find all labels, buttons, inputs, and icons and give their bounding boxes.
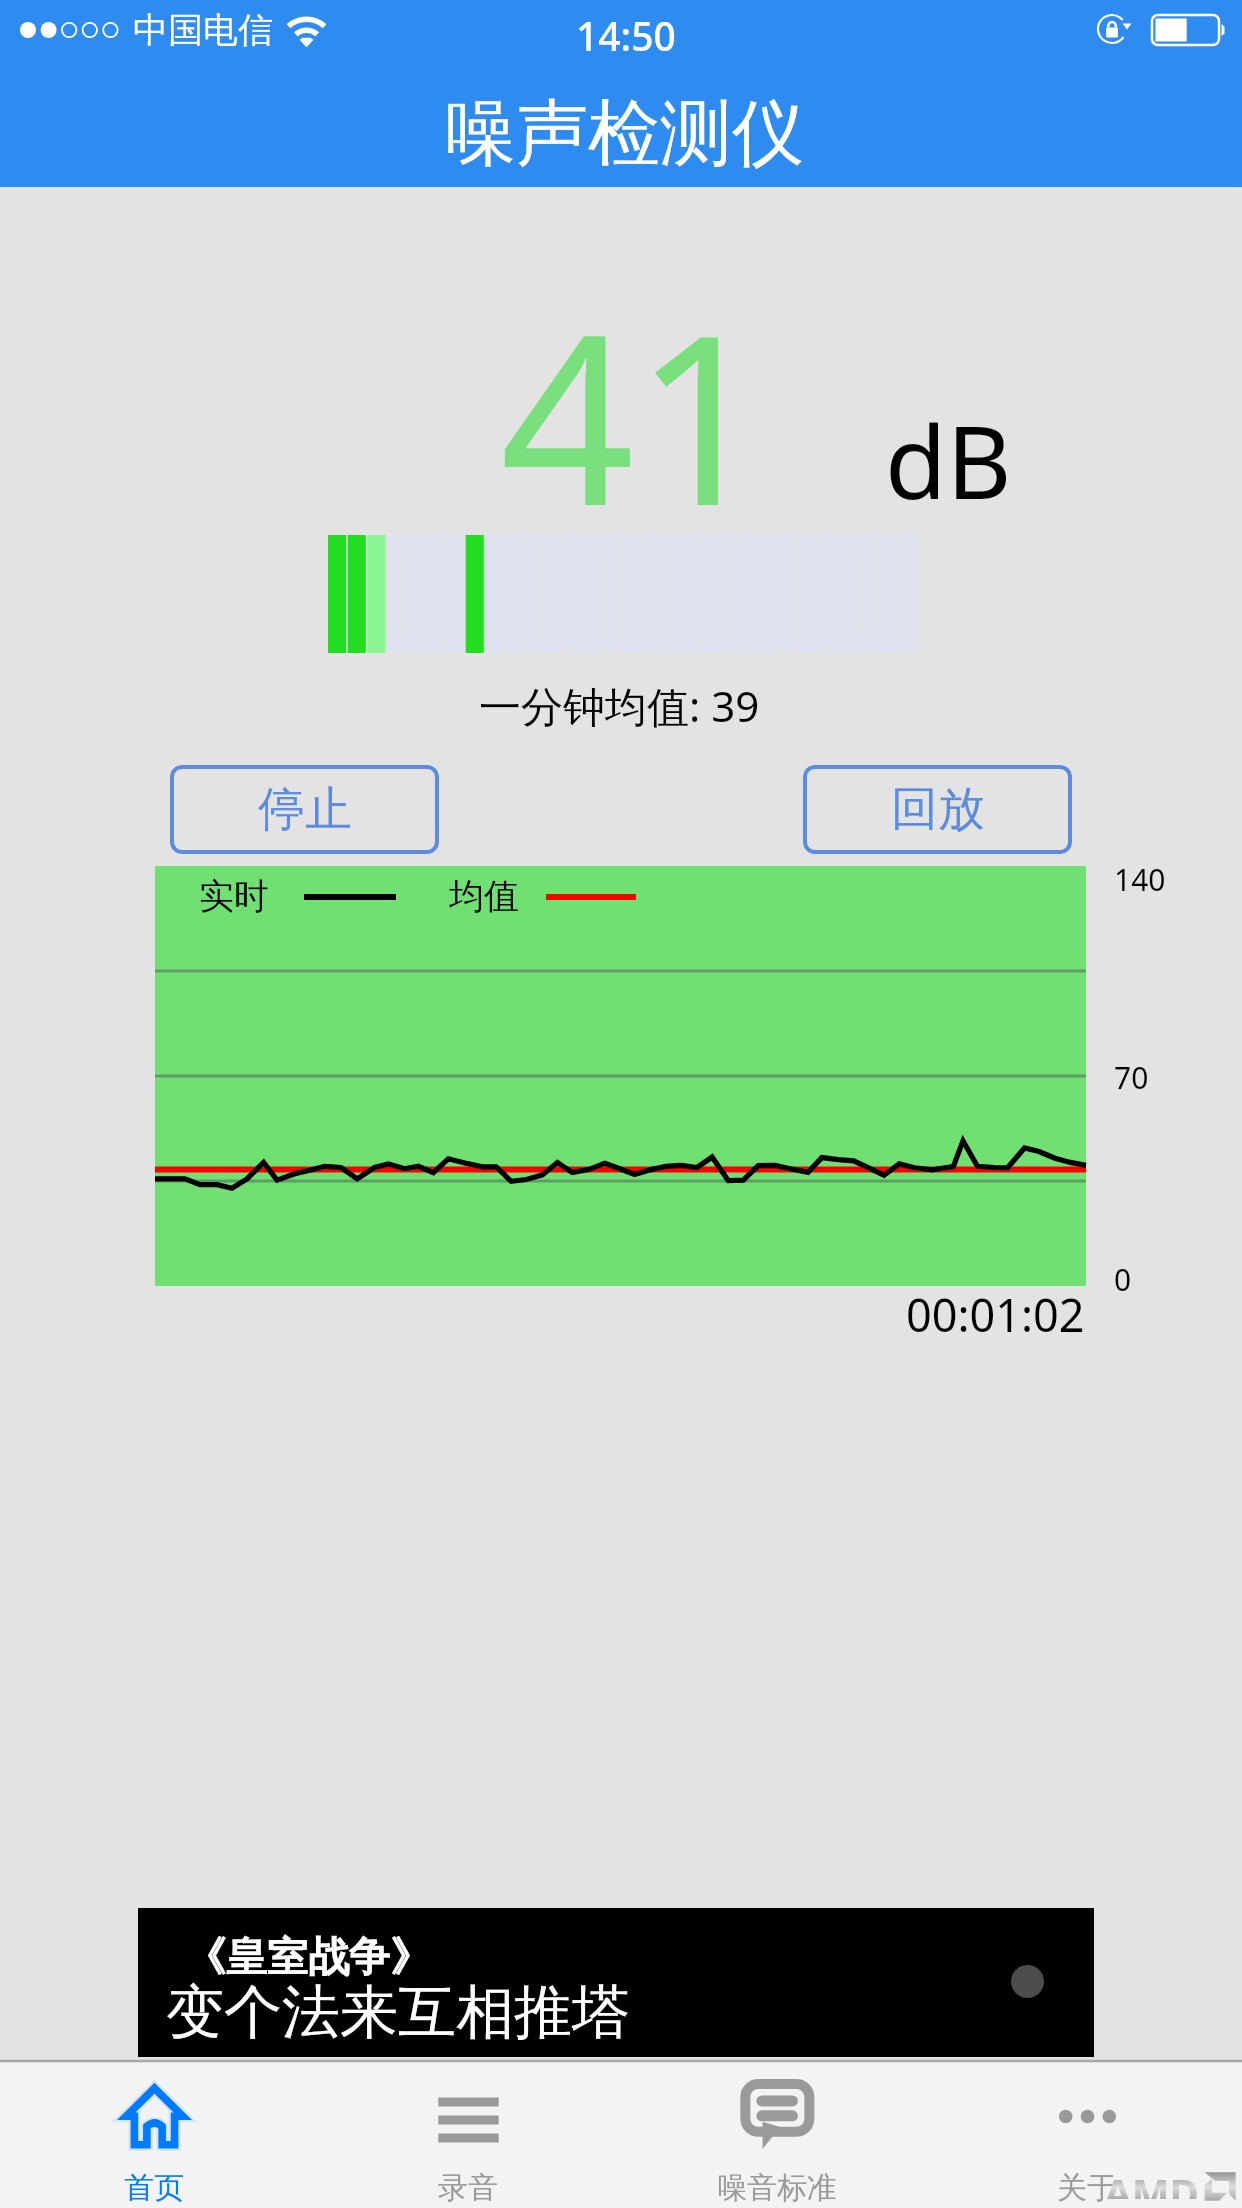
staticText: 41: [500, 254, 769, 574]
staticText: 均值: [449, 874, 519, 918]
staticText: 140: [1114, 859, 1166, 900]
staticText: 噪音标准: [717, 2169, 837, 2207]
button[interactable]: 《皇室战争》: [138, 1908, 1094, 2057]
staticText: 关于: [1057, 2169, 1117, 2207]
staticText: 停止: [258, 780, 352, 839]
staticText: 一分钟均值: 39: [479, 677, 760, 734]
staticText: 回放: [891, 780, 985, 839]
button[interactable]: Home: [50, 2060, 258, 2208]
staticText: 14:50: [576, 9, 676, 62]
staticText: 00:01:02: [906, 1284, 1085, 1345]
button[interactable]: 回放: [803, 765, 1072, 854]
staticText: 首页: [124, 2169, 184, 2207]
staticText: 录音: [438, 2169, 498, 2207]
staticText: 变个法来互相推塔: [166, 1976, 630, 2049]
button[interactable]: 停止: [170, 765, 439, 854]
button[interactable]: Recordings: [364, 2060, 572, 2208]
staticText: 噪声检测仪: [444, 89, 804, 180]
staticText: AMD: [1104, 2165, 1199, 2199]
button[interactable]: About: [983, 2060, 1191, 2208]
staticText: 70: [1114, 1057, 1149, 1098]
staticText: dB: [885, 392, 1012, 528]
staticText: 中国电信: [133, 8, 273, 52]
staticText: 《皇室战争》: [185, 1932, 431, 1984]
staticText: 实时: [199, 874, 269, 918]
staticText: 0: [1114, 1259, 1132, 1300]
button[interactable]: Noise standards: [673, 2060, 881, 2208]
